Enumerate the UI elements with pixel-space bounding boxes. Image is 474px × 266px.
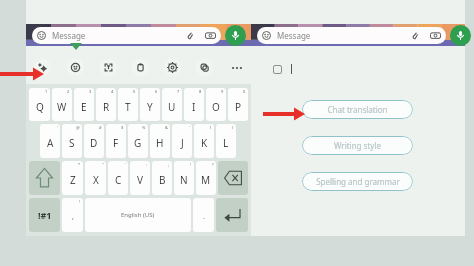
button[interactable]: ( xyxy=(194,124,214,158)
button[interactable]: : xyxy=(130,161,150,195)
button[interactable]: & xyxy=(150,124,170,158)
button[interactable]: ! xyxy=(174,161,194,195)
staticText: S xyxy=(69,136,75,150)
staticText: 0 xyxy=(243,89,246,94)
button[interactable]: ; xyxy=(152,161,172,195)
button[interactable]: . xyxy=(193,198,214,232)
button[interactable]: 4 xyxy=(96,88,116,121)
button[interactable]: More options xyxy=(228,59,245,76)
staticText: * xyxy=(78,162,81,167)
staticText: K xyxy=(201,136,208,150)
staticText: L xyxy=(223,136,229,150)
button[interactable]: Stickers xyxy=(196,59,213,76)
staticText: 6 xyxy=(155,89,158,94)
button[interactable]: Enter xyxy=(216,198,248,232)
staticText: 3 xyxy=(89,89,92,94)
button[interactable]: 8 xyxy=(184,88,204,121)
staticText: ' xyxy=(125,162,126,167)
staticText: J xyxy=(181,136,184,150)
button[interactable]: Voice message xyxy=(225,25,246,46)
staticText: B xyxy=(159,173,166,187)
staticText: @ xyxy=(76,125,80,130)
staticText: : xyxy=(146,162,148,167)
staticText: N xyxy=(180,173,188,187)
button[interactable]: 5 xyxy=(118,88,138,121)
staticText: Q xyxy=(36,100,44,114)
button[interactable]: Spelling and grammar xyxy=(302,172,413,191)
button[interactable]: Magic compose xyxy=(34,59,51,76)
other: Attach xyxy=(185,31,195,41)
button[interactable]: ) xyxy=(216,124,236,158)
button[interactable]: 0 xyxy=(228,88,248,121)
staticText: Spelling and grammar xyxy=(316,176,400,187)
button[interactable]: ' xyxy=(172,124,192,158)
button[interactable]: !#1 xyxy=(29,198,60,232)
button[interactable]: 9 xyxy=(206,88,226,121)
staticText: ? xyxy=(212,162,214,167)
button[interactable]: Keyboard toggle xyxy=(273,65,282,74)
button[interactable]: Message xyxy=(257,27,446,44)
staticText: ) xyxy=(232,125,234,130)
staticText: X xyxy=(93,173,99,187)
staticText: R xyxy=(103,100,110,114)
button[interactable]: Emoji xyxy=(67,59,84,76)
staticText: W xyxy=(57,100,67,114)
staticText: 1 xyxy=(45,89,48,94)
staticText: Chat translation xyxy=(327,104,388,115)
staticText: U xyxy=(168,100,176,114)
button[interactable]: ! xyxy=(62,198,83,232)
button[interactable]: Writing style xyxy=(302,136,413,155)
staticText: # xyxy=(99,125,102,130)
staticText: 7 xyxy=(177,89,180,94)
staticText: H xyxy=(156,136,164,150)
button[interactable]: % xyxy=(128,124,148,158)
button[interactable]: @ xyxy=(62,124,82,158)
staticText: " xyxy=(102,162,104,167)
staticText: Y xyxy=(147,100,153,114)
staticText: 8 xyxy=(199,89,202,94)
button[interactable]: Chat translation xyxy=(302,100,413,119)
button[interactable]: 2 xyxy=(52,88,72,121)
staticText: & xyxy=(165,125,168,130)
button[interactable]: ' xyxy=(40,124,60,158)
staticText: 2 xyxy=(67,89,70,94)
button[interactable]: 1 xyxy=(29,88,50,121)
button[interactable]: $ xyxy=(106,124,126,158)
staticText: Message xyxy=(52,30,86,41)
button[interactable]: Shift xyxy=(29,161,60,195)
button[interactable]: Text scan xyxy=(100,59,117,76)
button[interactable]: 3 xyxy=(74,88,94,121)
staticText: !#1 xyxy=(38,209,52,221)
staticText: Message xyxy=(277,30,311,41)
button[interactable]: 7 xyxy=(162,88,182,121)
button[interactable]: Settings xyxy=(164,59,181,76)
button[interactable]: # xyxy=(84,124,104,158)
staticText: % xyxy=(142,125,146,130)
staticText: G xyxy=(134,136,142,150)
staticText: Z xyxy=(70,173,76,187)
other: Camera xyxy=(430,30,441,41)
button[interactable]: Clipboard xyxy=(132,59,149,76)
button[interactable]: 6 xyxy=(140,88,160,121)
staticText: C xyxy=(115,173,122,187)
staticText: M xyxy=(201,173,211,187)
staticText: Writing style xyxy=(334,140,381,151)
staticText: F xyxy=(113,136,119,150)
button[interactable]: " xyxy=(85,161,106,195)
button[interactable]: ' xyxy=(108,161,128,195)
staticText: O xyxy=(212,100,220,114)
button[interactable]: ? xyxy=(196,161,216,195)
button[interactable]: Message xyxy=(32,27,221,44)
staticText: P xyxy=(235,100,242,114)
staticText: $ xyxy=(121,125,124,130)
staticText: A xyxy=(47,136,54,150)
button[interactable]: * xyxy=(62,161,83,195)
staticText: . xyxy=(203,212,205,222)
staticText: ! xyxy=(190,162,192,167)
button[interactable]: Voice message xyxy=(450,25,471,46)
button[interactable]: Backspace xyxy=(218,161,248,195)
button[interactable]: English (US) xyxy=(85,198,191,232)
staticText: T xyxy=(125,100,131,114)
staticText: ' xyxy=(189,125,190,130)
staticText: 9 xyxy=(221,89,224,94)
